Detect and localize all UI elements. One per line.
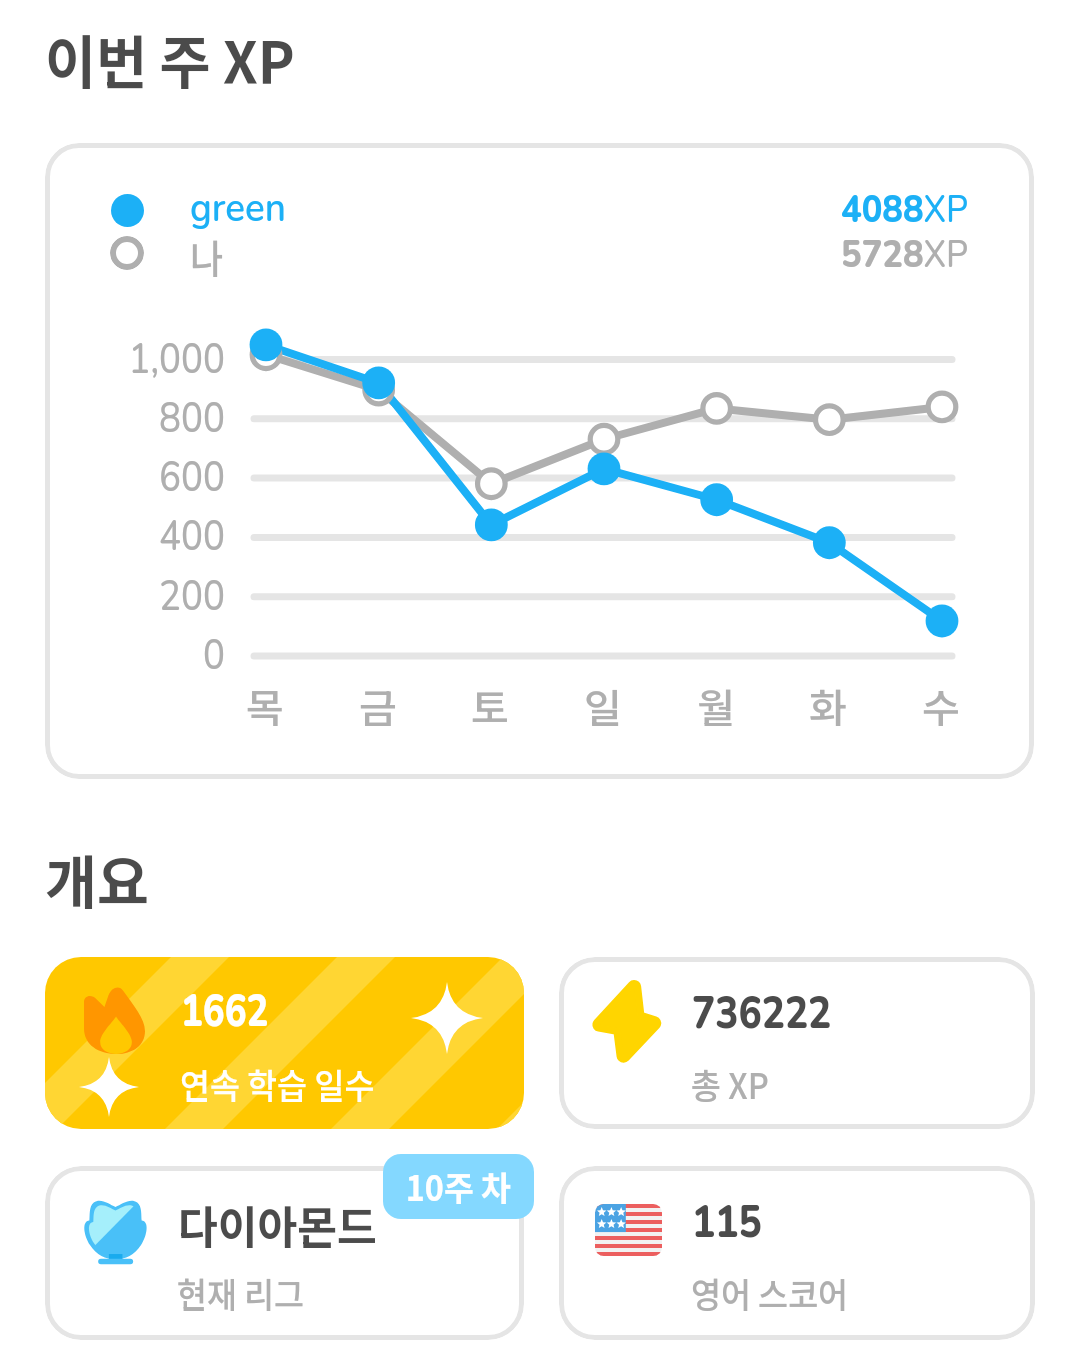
staticText: 200: [45, 567, 225, 626]
staticText: 1662: [181, 981, 269, 1042]
staticText: 나: [190, 228, 223, 286]
staticText: 수: [301, 677, 960, 735]
staticText: 115: [692, 1192, 762, 1253]
staticText: 다이아몬드: [178, 1192, 378, 1257]
staticText: 총 XP: [691, 1058, 769, 1109]
staticText: 월: [76, 677, 735, 735]
staticText: 10주 차: [406, 1162, 511, 1211]
staticText: 5728XP: [389, 229, 968, 281]
staticText: 영어 스코어: [691, 1267, 848, 1318]
staticText: 현재 리그: [177, 1267, 304, 1318]
staticText: 개요: [45, 837, 149, 921]
staticText: 600: [45, 448, 225, 507]
staticText: 화: [188, 677, 847, 735]
staticText: 금: [45, 677, 397, 735]
other: Current league: [84, 1199, 147, 1263]
button[interactable]: Streak: [45, 957, 524, 1129]
staticText: 4088XP: [389, 184, 968, 236]
other: Total XP: [597, 984, 656, 1058]
staticText: 1,000: [45, 330, 225, 389]
staticText: 0: [45, 626, 225, 685]
staticText: 736222: [692, 983, 832, 1044]
button[interactable]: Total XP: [559, 957, 1035, 1129]
staticText: 연속 학습 일수: [180, 1058, 374, 1109]
staticText: 일: [45, 677, 622, 735]
staticText: 800: [45, 389, 225, 448]
button[interactable]: English score: [559, 1166, 1035, 1340]
button[interactable]: Current league: [45, 1166, 524, 1340]
staticText: green: [190, 181, 287, 236]
button[interactable]: green: [45, 143, 1034, 779]
other: Streak: [84, 986, 145, 1054]
staticText: 토: [45, 677, 509, 735]
staticText: 이번 주 XP: [45, 17, 295, 101]
button[interactable]: 10주 차: [383, 1154, 534, 1219]
staticText: 400: [45, 507, 225, 566]
other: English score: [595, 1204, 662, 1256]
staticText: 목: [45, 677, 284, 735]
